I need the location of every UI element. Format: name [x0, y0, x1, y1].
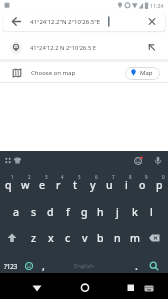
staticText: c — [65, 231, 71, 245]
button[interactable]: b — [92, 226, 109, 250]
staticText: k — [132, 205, 138, 219]
button[interactable] — [53, 257, 115, 273]
staticText: 11:24 — [150, 2, 164, 9]
button[interactable] — [120, 277, 142, 297]
staticText: t — [73, 178, 78, 192]
staticText: 7 — [112, 174, 115, 180]
button[interactable]: i — [118, 173, 135, 197]
staticText: i — [125, 178, 128, 192]
staticText: q — [5, 178, 12, 192]
staticText: y — [90, 178, 96, 192]
button[interactable] — [74, 277, 96, 297]
button[interactable]: j — [109, 200, 126, 224]
staticText: , — [42, 259, 45, 273]
staticText: r — [56, 178, 61, 192]
staticText: n — [114, 231, 121, 245]
staticText: z — [31, 231, 37, 245]
staticText: x — [48, 231, 54, 245]
staticText: v — [82, 231, 88, 245]
staticText: 41°24'12.2 N 2°10'26.5 E — [30, 44, 96, 52]
staticText: Choose on map — [31, 69, 76, 77]
button[interactable] — [141, 279, 157, 295]
button[interactable]: p — [151, 173, 168, 197]
button[interactable]: d — [42, 200, 59, 224]
staticText: s — [31, 205, 37, 219]
button[interactable]: h — [92, 200, 109, 224]
staticText: 5 — [78, 174, 81, 180]
button[interactable]: n — [109, 226, 126, 250]
staticText: 0 — [162, 174, 165, 180]
button[interactable] — [4, 230, 21, 246]
staticText: f — [66, 205, 70, 219]
staticText: u — [106, 178, 113, 192]
staticText: 8 — [129, 174, 132, 180]
staticText: 3 — [45, 174, 48, 180]
button[interactable]: , — [35, 254, 52, 278]
button[interactable]: . — [128, 254, 145, 278]
staticText: English — [74, 262, 94, 270]
staticText: l — [150, 205, 153, 219]
button[interactable]: x — [42, 226, 59, 250]
staticText: . — [135, 259, 138, 273]
staticText: 4 — [61, 174, 64, 180]
staticText: ?123 — [4, 262, 18, 270]
staticText: m — [130, 231, 140, 245]
button[interactable]: c — [59, 226, 76, 250]
button[interactable]: m — [126, 226, 143, 250]
button[interactable]: g — [76, 200, 93, 224]
button[interactable]: a — [8, 200, 25, 224]
staticText: g — [81, 205, 88, 219]
button[interactable]: r — [50, 173, 67, 197]
button[interactable] — [0, 62, 168, 83]
staticText: 9 — [145, 174, 148, 180]
button[interactable]: v — [76, 226, 93, 250]
staticText: Map — [140, 69, 153, 77]
staticText: o — [139, 178, 146, 192]
staticText: h — [97, 205, 104, 219]
button[interactable] — [144, 257, 166, 273]
staticText: 6 — [95, 174, 98, 180]
button[interactable] — [3, 12, 165, 31]
button[interactable]: s — [25, 200, 42, 224]
button[interactable]: y — [84, 173, 101, 197]
button[interactable]: k — [126, 200, 143, 224]
button[interactable]: f — [59, 200, 76, 224]
button[interactable]: z — [25, 226, 42, 250]
button[interactable] — [2, 257, 20, 273]
button[interactable] — [21, 257, 37, 273]
staticText: 2 — [28, 174, 31, 180]
button[interactable]: o — [134, 173, 151, 197]
button[interactable] — [26, 277, 48, 297]
button[interactable]: u — [101, 173, 118, 197]
staticText: w — [21, 178, 30, 192]
staticText: 1 — [11, 174, 14, 180]
staticText: a — [13, 205, 20, 219]
staticText: p — [156, 178, 163, 192]
staticText: j — [116, 205, 119, 219]
staticText: 41°24'12.2"N 2°10'26.5"E — [30, 18, 101, 26]
button[interactable]: l — [143, 200, 160, 224]
staticText: d — [47, 205, 54, 219]
button[interactable]: q — [0, 173, 17, 197]
button[interactable]: e — [34, 173, 51, 197]
button[interactable] — [0, 36, 168, 59]
staticText: b — [97, 231, 104, 245]
button[interactable] — [125, 67, 160, 80]
button[interactable]: w — [17, 173, 34, 197]
button[interactable]: t — [67, 173, 84, 197]
staticText: e — [39, 178, 46, 192]
button[interactable] — [146, 230, 166, 246]
